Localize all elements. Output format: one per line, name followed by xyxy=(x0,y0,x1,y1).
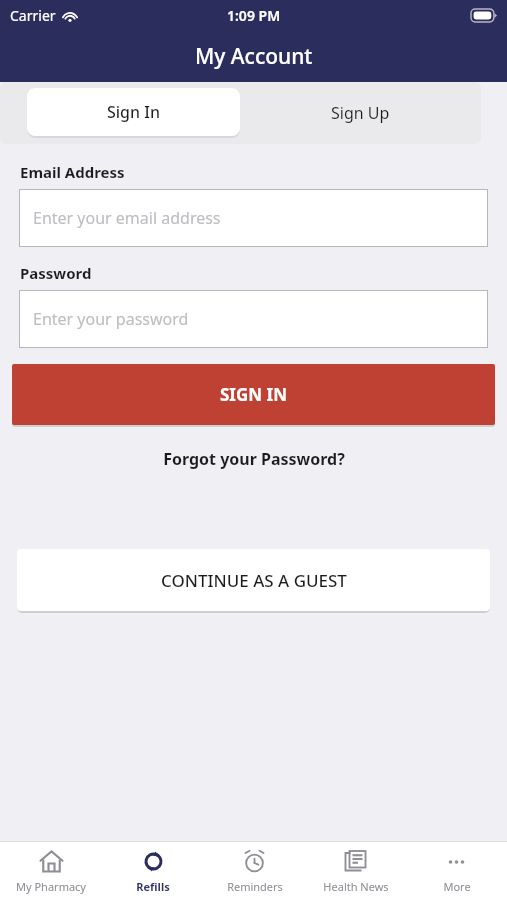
staticText: 1:09 PM xyxy=(227,6,281,25)
staticText: CONTINUE AS A GUEST xyxy=(161,569,347,592)
button[interactable]: CONTINUE AS A GUEST xyxy=(17,549,490,611)
staticText: Carrier xyxy=(10,6,56,25)
staticText: Enter your email address xyxy=(33,207,221,229)
staticText: More xyxy=(443,879,471,894)
staticText: Email Address xyxy=(20,162,125,182)
button[interactable]: Sign In xyxy=(27,88,240,136)
staticText: Reminders xyxy=(227,879,283,894)
button[interactable]: Enter your email address xyxy=(19,189,488,247)
staticText: Sign In xyxy=(107,101,160,123)
button[interactable]: Sign Up xyxy=(240,82,481,144)
staticText: Sign Up xyxy=(331,102,390,124)
button[interactable]: My Pharmacy xyxy=(0,842,102,900)
staticText: Refills xyxy=(136,879,170,894)
staticText: My Account xyxy=(195,42,313,71)
button[interactable]: Enter your password xyxy=(19,290,488,348)
button[interactable]: Reminders xyxy=(204,842,305,900)
staticText: SIGN IN xyxy=(220,383,287,406)
staticText: Password xyxy=(20,263,92,283)
button[interactable]: SIGN IN xyxy=(12,364,495,425)
staticText: Health News xyxy=(323,879,389,894)
staticText: My Pharmacy xyxy=(16,879,86,894)
button[interactable]: Refills xyxy=(102,842,204,900)
button[interactable]: More xyxy=(406,842,507,900)
staticText: Forgot your Password? xyxy=(163,448,345,470)
staticText: Enter your password xyxy=(33,308,189,330)
button[interactable]: Health News xyxy=(305,842,406,900)
button[interactable]: Forgot your Password? xyxy=(153,444,355,474)
